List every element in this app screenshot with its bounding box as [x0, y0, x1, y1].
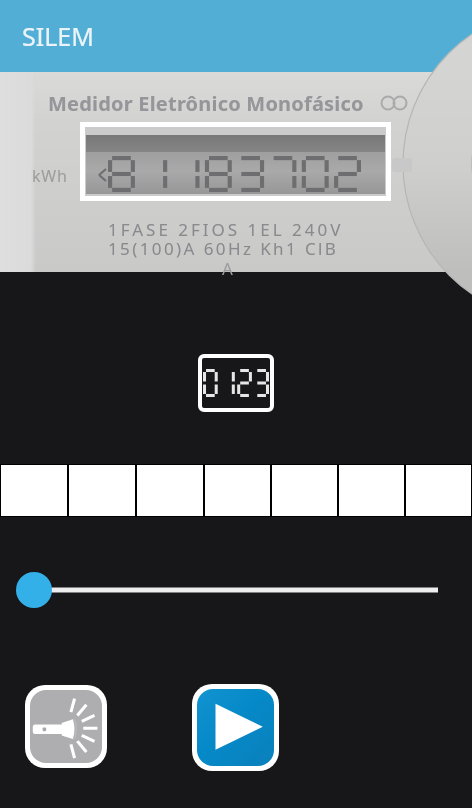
staticText: SILEM: [22, 19, 94, 53]
button[interactable]: [0, 570, 472, 610]
button[interactable]: SILEM: [0, 0, 472, 72]
staticText: kWh: [32, 165, 68, 187]
button[interactable]: Start recognition: [197, 689, 274, 766]
staticText: 15(100)A 60Hz Kh1 ClB: [108, 237, 339, 260]
button[interactable]: Flashlight: [30, 690, 102, 763]
staticText: A: [222, 257, 233, 280]
staticText: Medidor Eletrônico Monofásico: [48, 90, 364, 117]
staticText: 1FASE 2FIOS 1EL 240V: [108, 218, 344, 241]
